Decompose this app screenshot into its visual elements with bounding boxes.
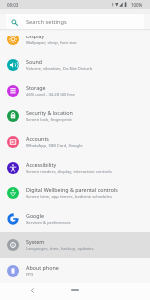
button[interactable]: Search settings <box>6 14 144 29</box>
staticText: System <box>26 238 45 245</box>
staticText: Screen lock, fingerprint <box>26 117 72 123</box>
staticText: WhatsApp, SIM Card, Google <box>26 143 83 149</box>
button[interactable]: Accessibility <box>0 155 150 181</box>
button[interactable]: Home <box>68 285 82 295</box>
staticText: Sound <box>26 58 43 65</box>
staticText: Search settings <box>26 18 67 26</box>
staticText: FP3 <box>26 272 34 278</box>
button[interactable]: Digital Wellbeing & parental controls <box>0 180 150 206</box>
staticText: Google <box>26 212 45 219</box>
staticText: Wallpaper, sleep, font size <box>26 40 77 46</box>
staticText: Accessibility <box>26 161 57 168</box>
staticText: Services & preferences <box>26 220 71 226</box>
button[interactable]: About phone <box>0 258 150 284</box>
staticText: Display <box>26 36 45 39</box>
staticText: Accounts <box>26 135 49 142</box>
button[interactable]: Google <box>0 206 150 232</box>
button[interactable]: Security & location <box>0 103 150 129</box>
staticText: Screen time, app timers, bedtime schedul… <box>26 194 112 200</box>
button[interactable]: Back <box>25 283 39 297</box>
button[interactable]: System <box>0 232 150 258</box>
staticText: 100% <box>131 2 143 8</box>
button[interactable]: Storage <box>0 78 150 104</box>
staticText: Digital Wellbeing & parental controls <box>26 186 118 193</box>
staticText: Languages, time, backup, updates <box>26 246 94 252</box>
staticText: Screen readers, display, interaction con… <box>26 169 112 175</box>
button[interactable]: Sound <box>0 52 150 78</box>
staticText: Volume, vibration, Do Not Disturb <box>26 66 93 72</box>
staticText: About phone <box>26 264 59 271</box>
button[interactable]: Display <box>0 36 150 52</box>
staticText: 09:03 <box>7 2 19 8</box>
button[interactable]: Accounts <box>0 129 150 155</box>
staticText: 46% used - 34.28 GB free <box>26 92 75 98</box>
staticText: Storage <box>26 84 46 91</box>
staticText: Security & location <box>26 109 73 116</box>
